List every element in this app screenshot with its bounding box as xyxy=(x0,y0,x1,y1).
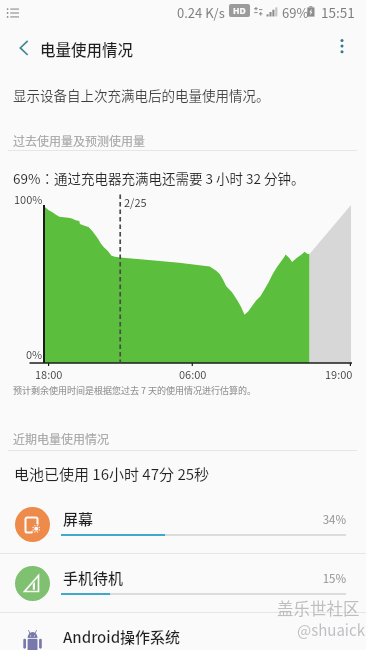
staticText: 显示设备自上次充满电后的电量使用情况。 xyxy=(13,85,270,105)
button[interactable]: Back xyxy=(4,24,44,68)
staticText: 06:00 xyxy=(179,366,207,382)
staticText: 过去使用量及预测使用量 xyxy=(13,132,146,149)
staticText: 2/25 xyxy=(124,194,147,210)
staticText: @shuaick xyxy=(297,619,365,641)
staticText: 15:51 xyxy=(321,2,355,22)
staticText: 18:00 xyxy=(35,366,63,382)
staticText: 0% xyxy=(26,346,43,362)
staticText: 69% xyxy=(282,3,309,22)
staticText: 34% xyxy=(300,511,346,528)
staticText: 手机待机 xyxy=(63,567,124,589)
staticText: 盖乐世社区 xyxy=(277,596,360,620)
staticText: 100% xyxy=(14,191,43,207)
staticText: 近期电量使用情况 xyxy=(13,430,110,447)
button[interactable]: Android操作系统 xyxy=(0,613,366,650)
staticText: 69%：通过充电器充满电还需要 3 小时 32 分钟。 xyxy=(13,168,305,188)
button[interactable]: More options xyxy=(326,24,358,68)
staticText: 15% xyxy=(300,570,346,587)
button[interactable]: 屏幕 xyxy=(0,495,366,554)
staticText: Android操作系统 xyxy=(63,626,181,648)
staticText: 屏幕 xyxy=(63,508,94,530)
staticText: 19:00 xyxy=(325,366,353,382)
staticText: 0.24 K/s xyxy=(177,3,225,22)
staticText: 电池已使用 16小时 47分 25秒 xyxy=(14,463,210,485)
staticText: HD xyxy=(233,5,246,17)
button[interactable]: 手机待机 xyxy=(0,554,366,613)
staticText: 电量使用情况 xyxy=(40,38,134,60)
staticText: 预计剩余使用时间是根据您过去 7 天的使用情况进行估算的。 xyxy=(13,384,257,397)
